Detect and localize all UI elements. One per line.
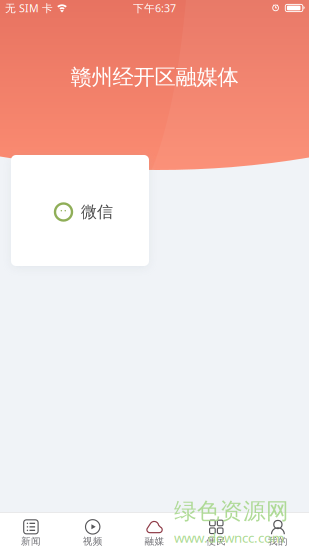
staticText: 融媒	[144, 535, 164, 547]
staticText: 便民	[206, 535, 226, 547]
staticText: 视频	[83, 535, 103, 547]
staticText: 绿色资源网	[174, 497, 289, 526]
staticText: 我的	[268, 535, 288, 547]
staticText: 赣州经开区融媒体	[70, 64, 238, 90]
button[interactable]: 新闻	[0, 513, 62, 550]
button[interactable]: 微信	[11, 155, 149, 266]
button[interactable]: 融媒	[124, 513, 185, 550]
button[interactable]: 视频	[62, 513, 124, 550]
staticText: 下午6:37	[133, 1, 176, 15]
button[interactable]: 我的	[247, 513, 309, 550]
staticText: 无 SIM 卡	[5, 1, 53, 15]
staticText: 新闻	[21, 535, 41, 547]
staticText: www.downcc.com	[174, 529, 284, 547]
staticText: 微信	[81, 202, 113, 222]
button[interactable]: 便民	[185, 513, 247, 550]
